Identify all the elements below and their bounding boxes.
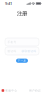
staticText: 验证码 xyxy=(8,49,17,53)
staticText: 注册 xyxy=(17,10,27,17)
button[interactable]: 用户协议 xyxy=(29,89,41,92)
button[interactable]: 手机号 xyxy=(5,38,39,46)
staticText: 获取验证码 xyxy=(21,49,36,53)
button[interactable]: 客服中心 xyxy=(2,89,17,92)
staticText: 客服中心 xyxy=(5,89,17,92)
staticText: 手机号 xyxy=(8,40,17,44)
staticText: 下一步 xyxy=(17,59,26,62)
staticText: 用户协议 xyxy=(29,89,41,92)
button[interactable]: 验证码 xyxy=(5,47,39,55)
button[interactable]: 下一步 xyxy=(16,59,28,63)
staticText: 9:41 xyxy=(5,1,12,6)
